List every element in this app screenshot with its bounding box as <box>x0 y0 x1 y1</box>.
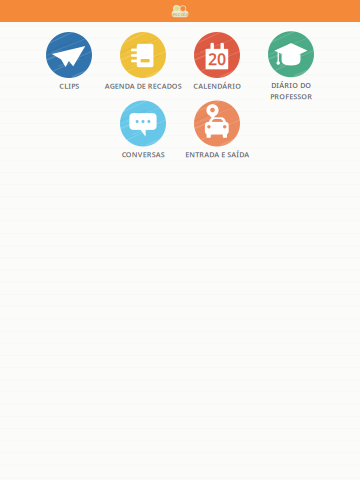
button[interactable]: ENTRADA E SAÍDA <box>180 100 254 169</box>
button[interactable]: DIÁRIO DO PROFESSOR <box>254 32 328 100</box>
button[interactable]: CLIPS <box>32 32 106 100</box>
button[interactable]: 20 <box>180 32 254 100</box>
staticText: CONVERSAS <box>121 149 164 159</box>
staticText: DIÁRIO DO PROFESSOR <box>270 80 312 101</box>
staticText: escola <box>172 11 188 18</box>
button[interactable]: CONVERSAS <box>106 100 180 169</box>
staticText: CALENDÁRIO <box>193 81 241 91</box>
staticText: AGENDA DE RECADOS <box>104 81 181 91</box>
button[interactable]: AGENDA DE RECADOS <box>106 32 180 100</box>
staticText: 20 <box>208 48 226 70</box>
staticText: CLIPS <box>59 81 79 91</box>
button[interactable]: Home <box>171 2 189 20</box>
staticText: ENTRADA E SAÍDA <box>185 149 249 159</box>
